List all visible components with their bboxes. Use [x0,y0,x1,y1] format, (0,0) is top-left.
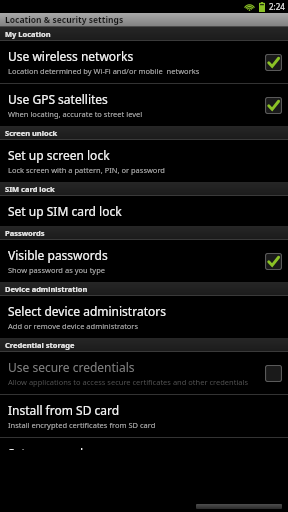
staticText: Passwords [5,228,45,238]
button[interactable]: Use GPS satellites [0,84,288,126]
staticText: Set up SIM card lock [8,203,122,219]
button[interactable]: Select device administrators [0,296,288,338]
staticText: My Location [5,29,51,39]
staticText: Set password [8,445,84,450]
button[interactable]: Set up screen lock [0,140,288,182]
staticText: Select device administrators [8,303,166,319]
other: Checked [265,97,282,114]
staticText: Show password as you type [8,265,106,275]
staticText: Add or remove device administrators [8,321,139,331]
staticText: Lock screen with a pattern, PIN, or pass… [8,165,165,175]
staticText: Use GPS satellites [8,91,108,107]
button[interactable]: Visible passwords [0,240,288,282]
staticText: SIM card lock [5,184,55,194]
staticText: Visible passwords [8,247,108,263]
staticText: Set up screen lock [8,147,110,163]
staticText: Use secure credentials [8,359,135,375]
button[interactable]: Use secure credentials [0,352,288,394]
staticText: Install encrypted certificates from SD c… [8,420,156,430]
staticText: Location & security settings [5,14,124,26]
staticText: Allow applications to access secure cert… [8,377,249,387]
button[interactable]: Install from SD card [0,395,288,437]
staticText: 2:24 [269,1,285,12]
staticText: Credential storage [5,340,75,350]
staticText: Use wireless networks [8,48,134,64]
staticText: Device administration [5,284,88,294]
button[interactable]: Set password [0,438,288,457]
button[interactable]: Use wireless networks [0,41,288,83]
other: Unchecked [265,365,282,382]
staticText: When locating, accurate to street level [8,109,143,119]
other: Checked [265,54,282,71]
button[interactable]: Set up SIM card lock [0,196,288,226]
staticText: Install from SD card [8,402,120,418]
staticText: Location determined by Wi-Fi and/or mobi… [8,66,200,76]
other: Checked [265,253,282,270]
staticText: Screen unlock [5,128,58,138]
